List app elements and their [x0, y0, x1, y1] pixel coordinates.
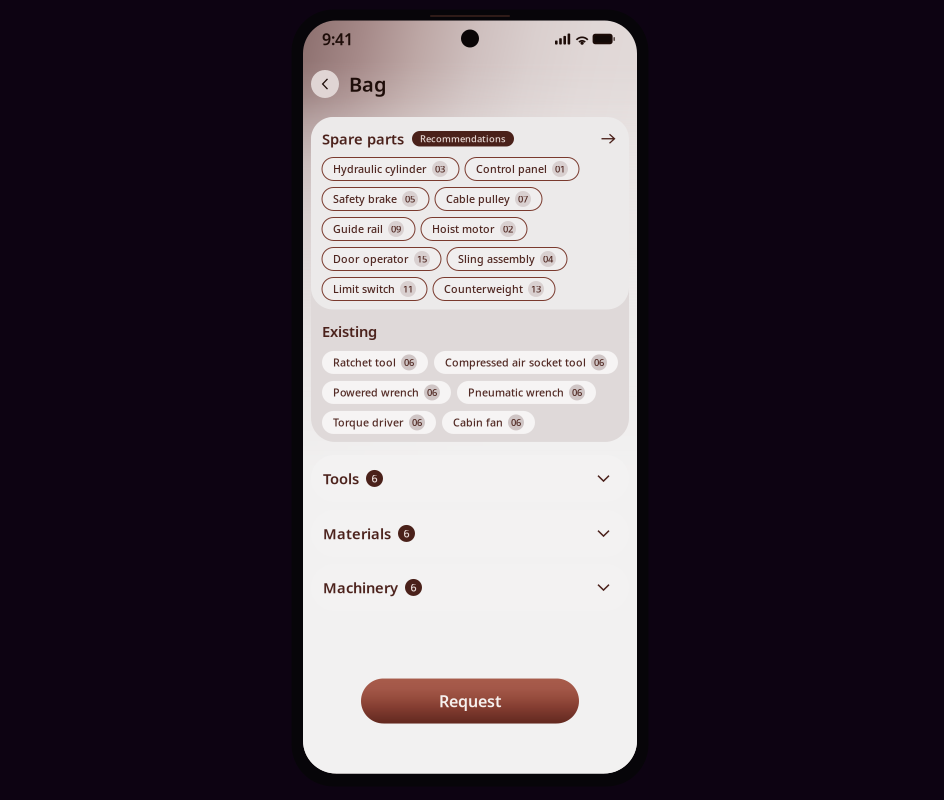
staticText: 06: [412, 416, 422, 429]
staticText: 04: [543, 253, 553, 265]
staticText: 09: [391, 223, 401, 235]
staticText: 05: [405, 193, 415, 205]
button[interactable]: Materials: [311, 510, 629, 557]
button[interactable]: Powered wrench: [322, 381, 451, 404]
staticText: 03: [435, 163, 445, 175]
button[interactable]: Tools: [311, 455, 629, 502]
staticText: Tools: [323, 469, 359, 488]
staticText: 06: [404, 356, 414, 369]
staticText: 06: [427, 386, 437, 399]
staticText: Recommendations: [420, 132, 506, 145]
staticText: 06: [572, 386, 582, 399]
staticText: 9:41: [322, 28, 353, 50]
button[interactable]: Hoist motor: [421, 217, 527, 240]
staticText: Control panel: [476, 162, 547, 176]
button[interactable]: Guide rail: [322, 217, 415, 240]
button[interactable]: Torque driver: [322, 411, 436, 434]
staticText: Ratchet tool: [333, 355, 396, 370]
button[interactable]: Back: [311, 70, 339, 98]
button[interactable]: Ratchet tool: [322, 351, 428, 374]
button[interactable]: Request: [361, 678, 579, 723]
staticText: Torque driver: [333, 415, 404, 430]
staticText: 15: [417, 253, 427, 265]
staticText: Request: [439, 690, 501, 712]
staticText: Cable pulley: [446, 192, 510, 206]
staticText: 07: [518, 193, 528, 205]
button[interactable]: Limit switch: [322, 277, 427, 300]
button[interactable]: Hydraulic cylinder: [322, 157, 459, 180]
staticText: Guide rail: [333, 222, 383, 236]
button[interactable]: Sling assembly: [447, 247, 567, 270]
button[interactable]: Cabin fan: [442, 411, 535, 434]
button[interactable]: Control panel: [465, 157, 579, 180]
staticText: 06: [594, 356, 604, 369]
button[interactable]: Door operator: [322, 247, 441, 270]
staticText: Safety brake: [333, 192, 397, 206]
staticText: Machinery: [323, 578, 398, 597]
button[interactable]: Pneumatic wrench: [457, 381, 596, 404]
staticText: Compressed air socket tool: [445, 355, 586, 370]
staticText: 13: [531, 283, 541, 295]
staticText: 6: [410, 580, 416, 595]
staticText: Pneumatic wrench: [468, 385, 564, 400]
staticText: Hydraulic cylinder: [333, 162, 427, 176]
staticText: Counterweight: [444, 282, 523, 296]
staticText: 01: [555, 163, 565, 175]
button[interactable]: Compressed air socket tool: [434, 351, 618, 374]
staticText: Sling assembly: [458, 252, 535, 266]
staticText: 6: [403, 526, 409, 541]
staticText: 11: [403, 283, 413, 295]
button[interactable]: Cable pulley: [435, 187, 542, 210]
staticText: Door operator: [333, 252, 409, 266]
staticText: Powered wrench: [333, 385, 419, 400]
staticText: Existing: [322, 321, 377, 341]
button[interactable]: Machinery: [311, 564, 629, 611]
staticText: Materials: [323, 524, 391, 543]
button[interactable]: See all spare parts: [598, 130, 618, 148]
staticText: 6: [371, 471, 377, 486]
staticText: Spare parts: [322, 129, 404, 148]
staticText: 06: [511, 416, 521, 429]
staticText: Cabin fan: [453, 415, 503, 430]
staticText: Limit switch: [333, 282, 395, 296]
staticText: 02: [503, 223, 513, 235]
staticText: Hoist motor: [432, 222, 495, 236]
button[interactable]: Safety brake: [322, 187, 429, 210]
staticText: Bag: [349, 71, 387, 97]
button[interactable]: Counterweight: [433, 277, 555, 300]
